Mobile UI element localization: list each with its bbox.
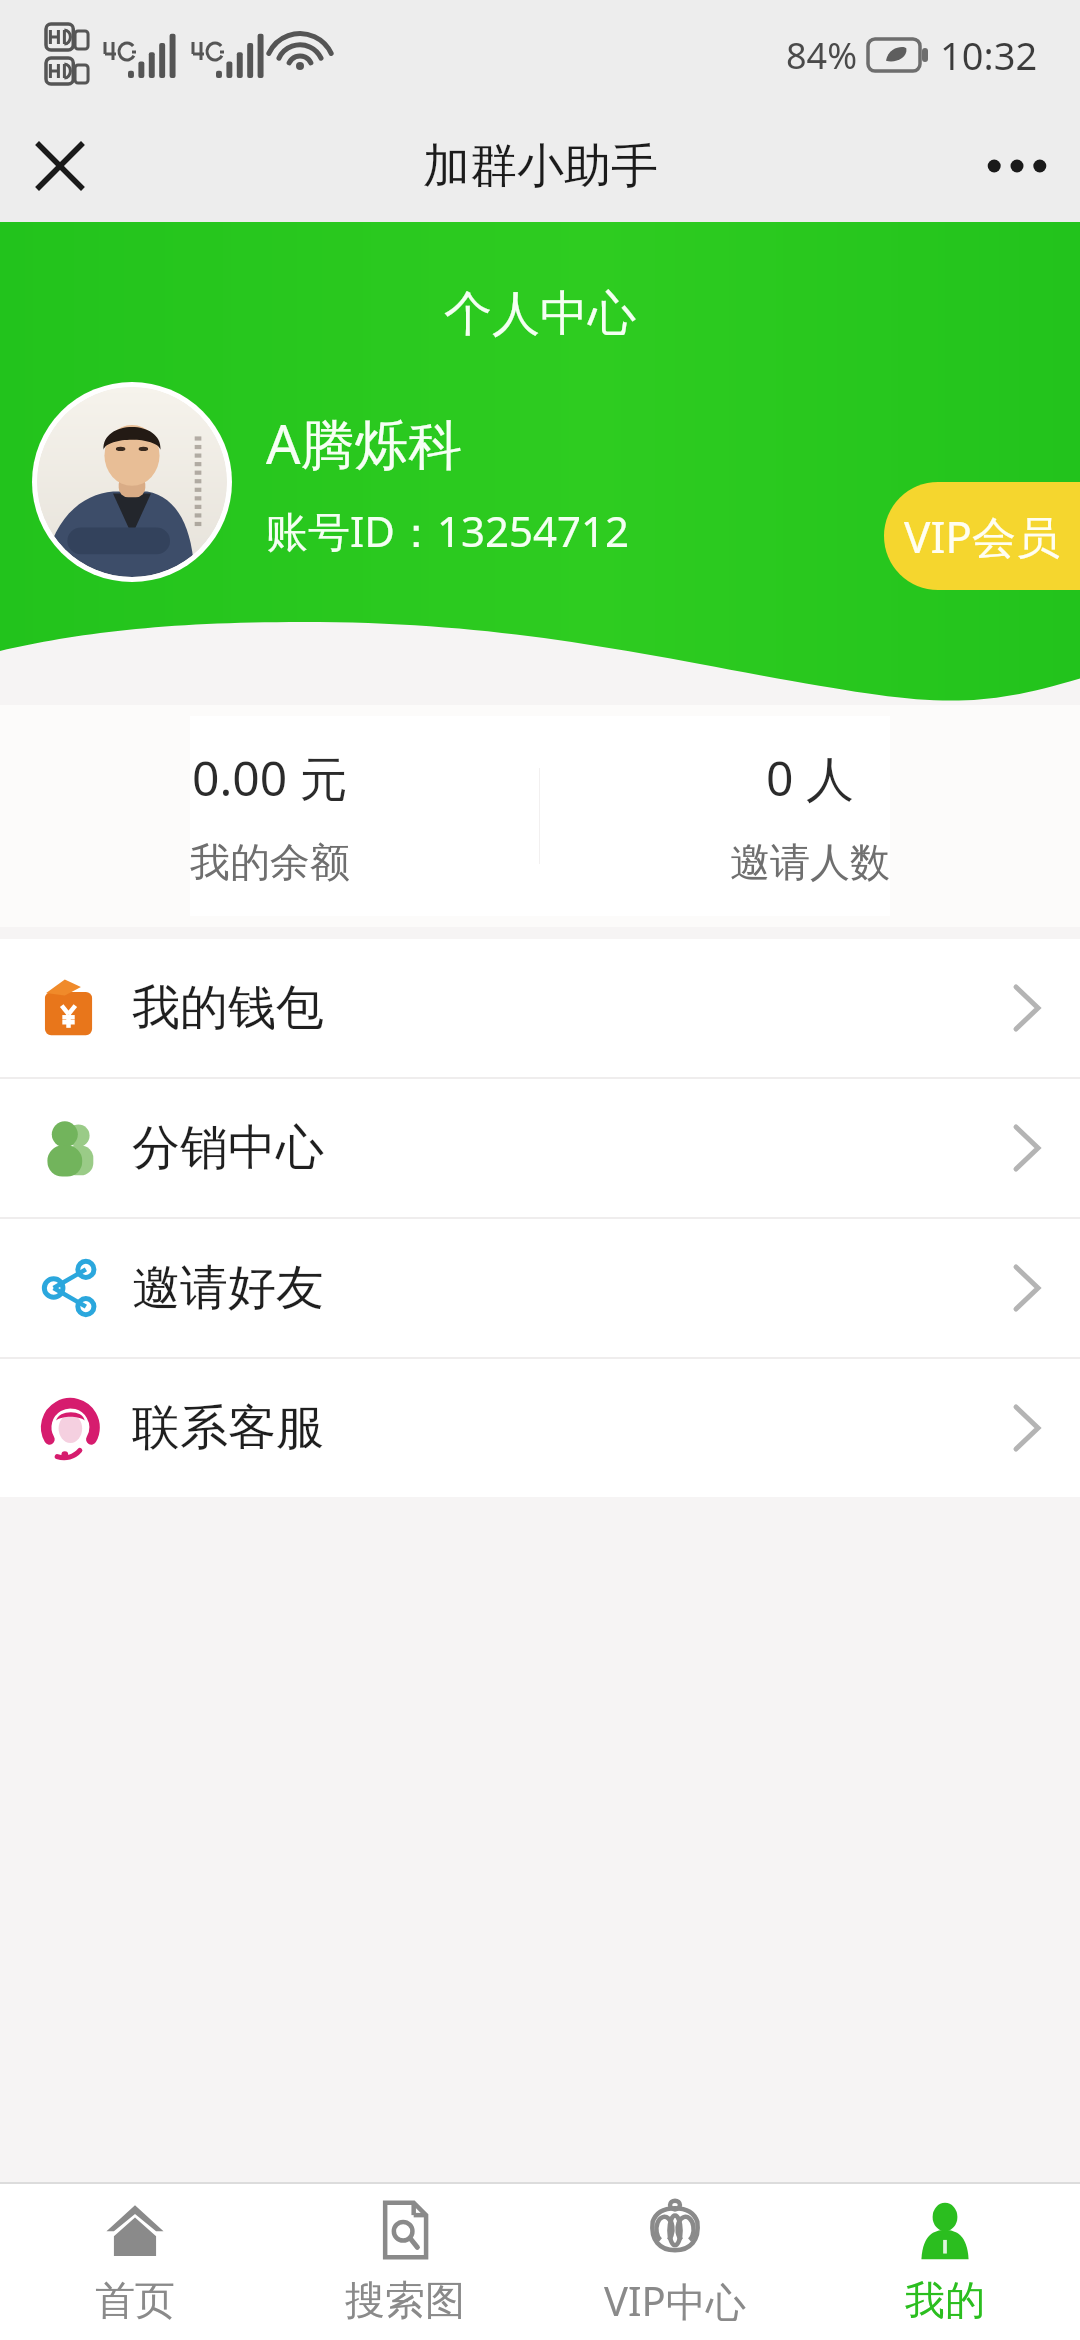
staticText: 分销中心 [132,1118,324,1178]
button[interactable]: More options [974,123,1060,209]
staticText: VIP中心 [604,2273,746,2328]
button[interactable]: 我的 [810,2184,1080,2340]
staticText: 我的余额 [190,837,350,887]
staticText: 0.00 元 [192,745,348,811]
staticText: 搜索图 [345,2275,465,2325]
button[interactable]: 0 人 [540,705,1080,927]
staticText: 邀请人数 [730,837,890,887]
staticText: 首页 [95,2275,175,2325]
staticText: 联系客服 [132,1398,324,1458]
staticText: A腾烁科 [266,406,463,480]
button[interactable]: 邀请好友 [0,1219,1080,1357]
staticText: 84% [786,31,858,80]
staticText: 我的钱包 [132,978,324,1038]
staticText: VIP会员 [904,506,1060,566]
button[interactable]: 分销中心 [0,1079,1080,1217]
staticText: 个人中心 [444,284,636,344]
staticText: 10:32 [940,29,1038,81]
button[interactable]: 搜索图 [270,2184,540,2340]
staticText: 0 人 [766,745,854,811]
button[interactable]: VIP会员 [884,482,1080,590]
staticText: 加群小助手 [423,137,658,196]
button[interactable]: 联系客服 [0,1359,1080,1497]
button[interactable]: Profile photo [37,387,227,577]
staticText: 我的 [905,2275,985,2325]
staticText: 账号ID：13254712 [266,502,630,559]
button[interactable]: Close [18,124,102,208]
staticText: 邀请好友 [132,1258,324,1318]
button[interactable]: 首页 [0,2184,270,2340]
button[interactable]: VIP中心 [540,2184,810,2340]
button[interactable]: 0.00 元 [0,705,539,927]
button[interactable]: 我的钱包 [0,939,1080,1077]
